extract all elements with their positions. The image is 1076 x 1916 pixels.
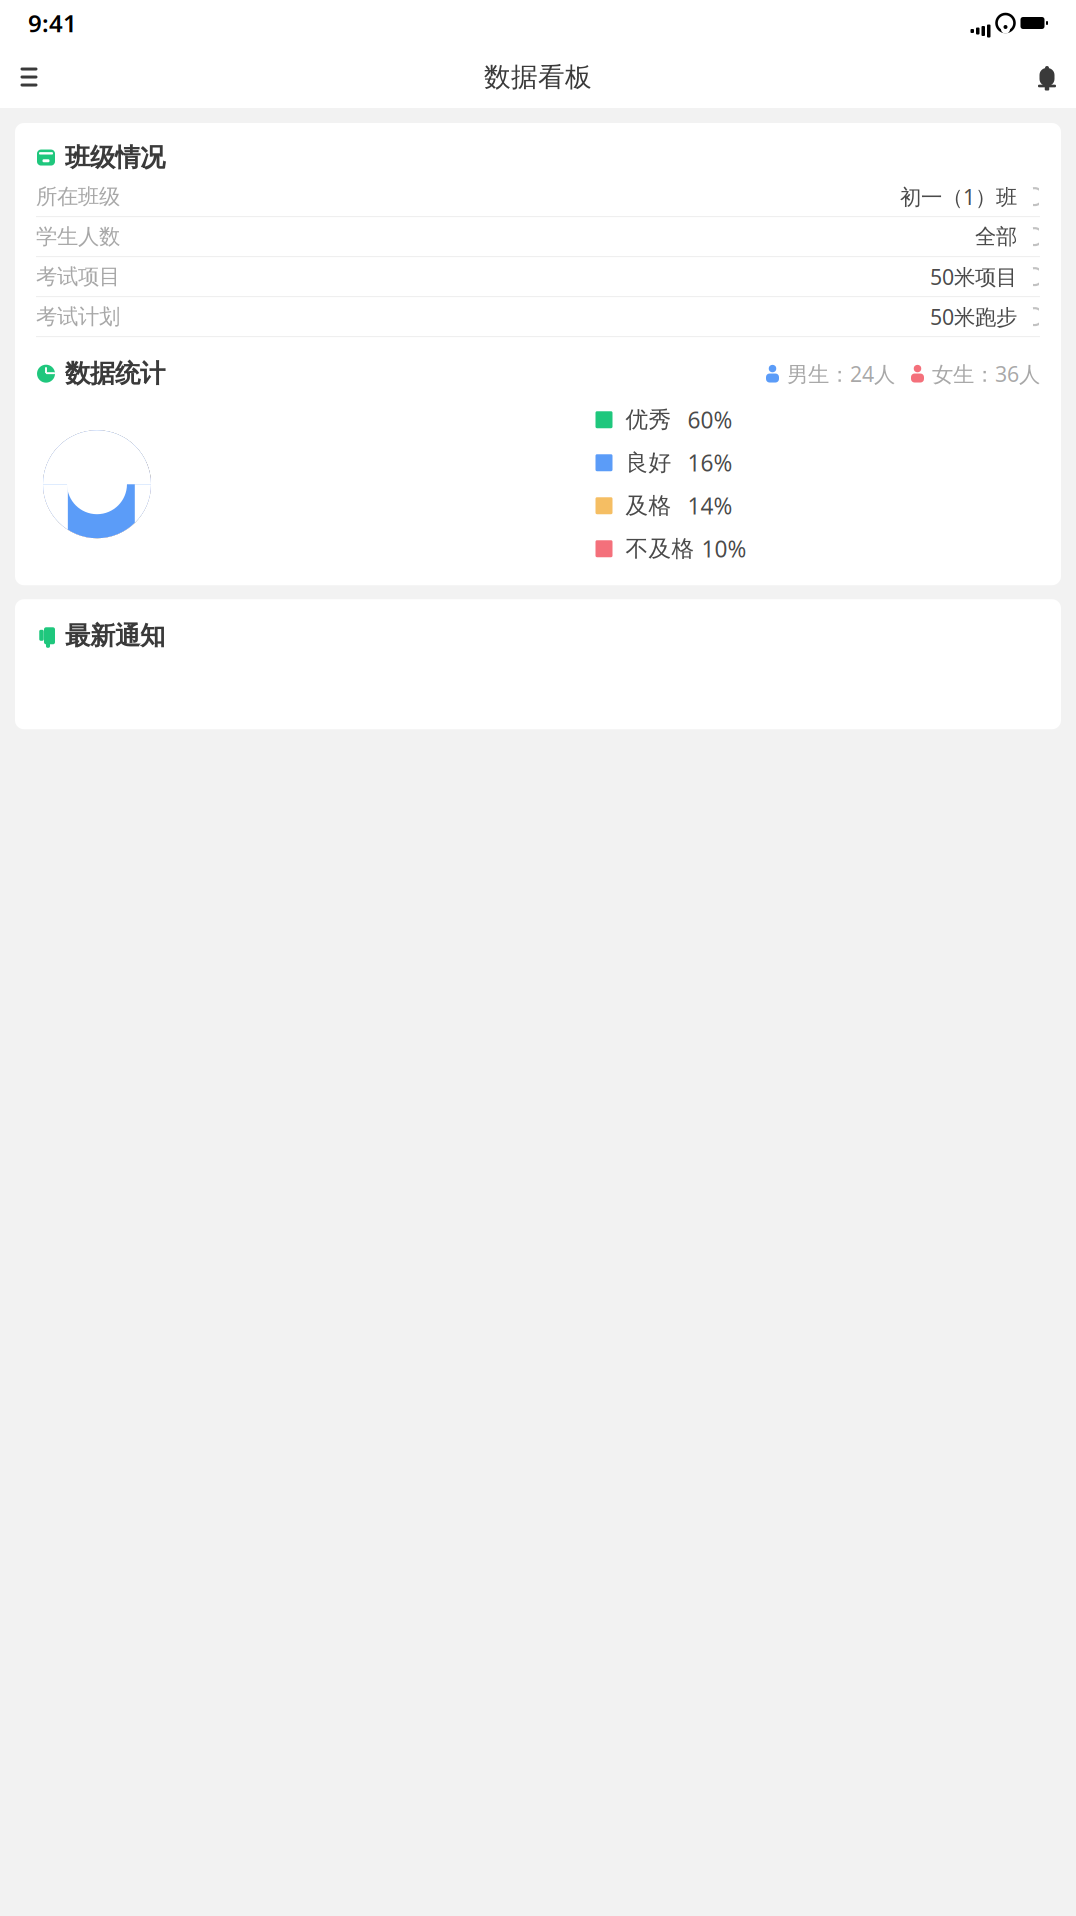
- staticText: 60%: [687, 405, 732, 435]
- staticText: 男生：24人: [787, 359, 895, 388]
- button[interactable]: 考试计划: [36, 297, 1040, 337]
- staticText: 良好: [625, 449, 671, 477]
- staticText: 初一（1）班: [900, 182, 1017, 211]
- staticText: 及格: [625, 492, 671, 520]
- staticText: 女生：36人: [932, 359, 1040, 388]
- staticText: 考试项目: [36, 263, 120, 290]
- staticText: 10%: [701, 534, 746, 564]
- staticText: 所在班级: [36, 183, 120, 210]
- staticText: 16%: [687, 448, 732, 478]
- staticText: 优秀: [625, 406, 671, 434]
- staticText: 不及格: [625, 535, 694, 563]
- staticText: 数据看板: [484, 61, 592, 93]
- staticText: 50米跑步: [930, 302, 1017, 331]
- staticText: 9:41: [28, 7, 77, 39]
- button[interactable]: 学生人数: [36, 217, 1040, 257]
- staticText: 全部: [975, 223, 1017, 250]
- button[interactable]: Menu: [11, 59, 47, 95]
- staticText: 50米项目: [930, 262, 1017, 291]
- button[interactable]: 考试项目: [36, 257, 1040, 297]
- staticText: 最新通知: [65, 620, 165, 651]
- staticText: 数据统计: [65, 358, 165, 389]
- button[interactable]: 所在班级: [36, 177, 1040, 217]
- staticText: 学生人数: [36, 223, 120, 250]
- staticText: 班级情况: [65, 142, 165, 173]
- staticText: 14%: [687, 491, 732, 521]
- button[interactable]: Notifications: [1029, 59, 1065, 95]
- staticText: 考试计划: [36, 303, 120, 330]
